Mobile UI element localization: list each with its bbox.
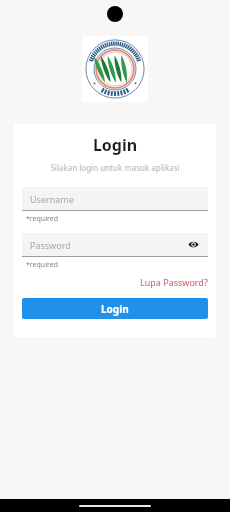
button[interactable]: Username <box>22 187 208 211</box>
button[interactable]: Show password <box>187 238 200 251</box>
button[interactable]: Password <box>22 233 208 257</box>
staticText: Silakan login untuk masuk aplikasi <box>18 162 212 173</box>
button[interactable]: Lupa Password? <box>136 275 212 289</box>
staticText: *required <box>26 214 58 224</box>
staticText: Login <box>101 302 129 316</box>
staticText: Username <box>30 193 200 205</box>
staticText: Login <box>18 134 212 156</box>
staticText: Password <box>30 239 187 251</box>
button[interactable]: Login <box>22 298 208 319</box>
staticText: Lupa Password? <box>140 276 208 288</box>
staticText: *required <box>26 260 58 270</box>
